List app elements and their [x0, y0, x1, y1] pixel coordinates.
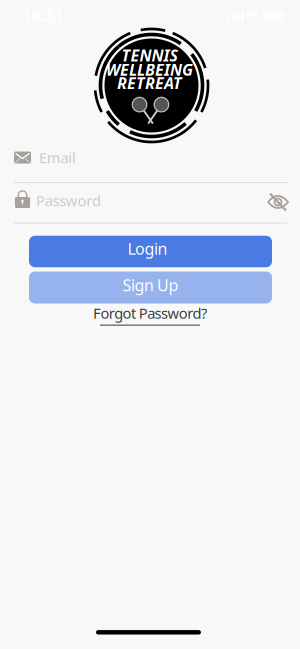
staticText: Password — [36, 191, 101, 210]
button[interactable]: Show password — [262, 188, 294, 216]
staticText: TENNIS — [121, 45, 177, 66]
button[interactable]: Forgot Password? — [93, 303, 207, 326]
staticText: Forgot Password? — [93, 303, 207, 323]
staticText: Email — [39, 148, 76, 167]
button[interactable]: Login — [29, 236, 272, 267]
staticText: Login — [127, 238, 167, 259]
staticText: RETREAT — [117, 72, 182, 94]
staticText: Sign Up — [122, 274, 178, 296]
button[interactable]: Sign Up — [29, 271, 272, 303]
staticText: WELLBEING — [106, 59, 193, 80]
